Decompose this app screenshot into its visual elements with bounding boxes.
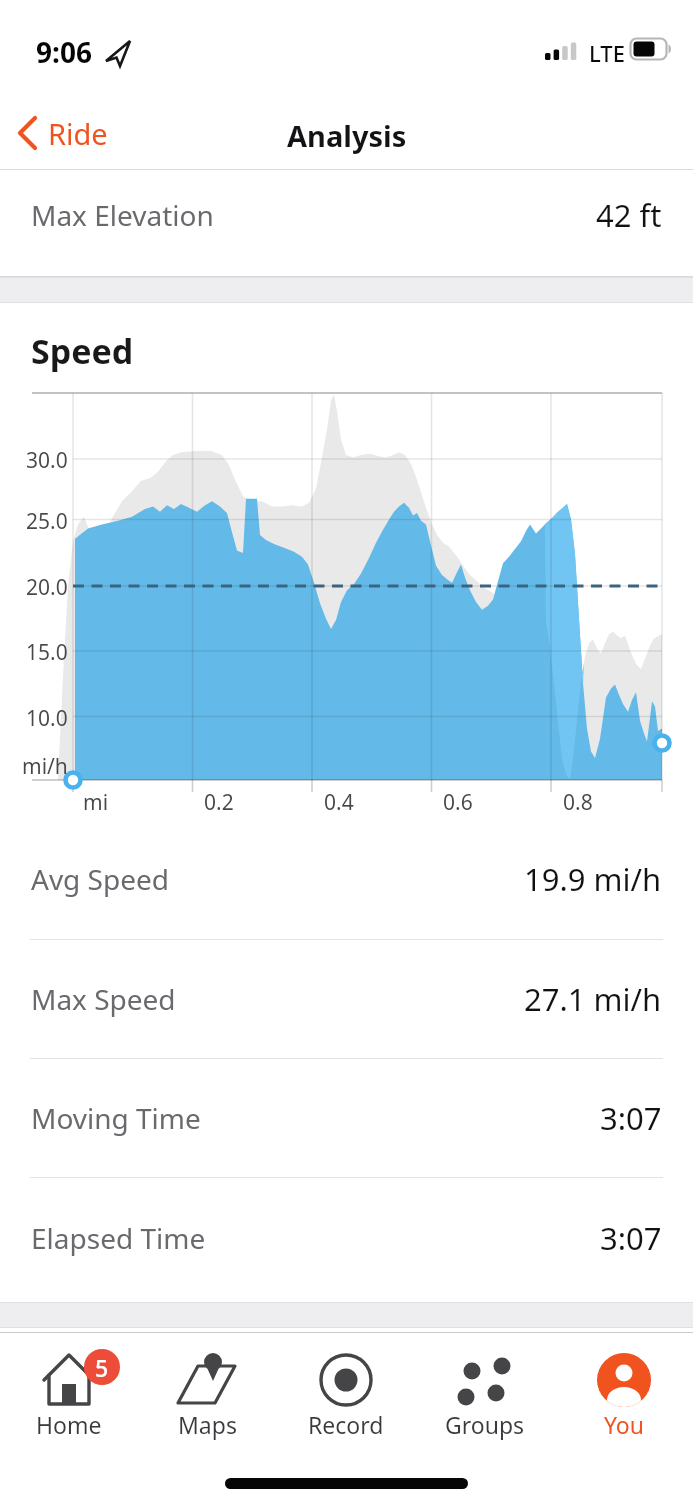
staticText: Record — [308, 1409, 384, 1440]
button[interactable]: Maps — [138, 1328, 276, 1500]
button[interactable]: You — [554, 1328, 693, 1500]
staticText: Analysis — [287, 116, 407, 155]
staticText: 42 ft — [596, 194, 662, 236]
staticText: 27.1 mi/h — [524, 978, 662, 1020]
staticText: mi — [83, 788, 109, 814]
staticText: mi/h — [22, 752, 68, 778]
staticText: Moving Time — [31, 1099, 201, 1137]
staticText: 10.0 — [26, 704, 68, 730]
staticText: 0.4 — [324, 788, 354, 814]
staticText: 0.2 — [204, 788, 234, 814]
staticText: Speed — [31, 328, 134, 374]
staticText: Elapsed Time — [31, 1219, 206, 1257]
staticText: LTE — [589, 38, 625, 68]
button[interactable]: Elapsed Time — [31, 1178, 662, 1297]
staticText: 20.0 — [26, 573, 68, 599]
staticText: Maps — [178, 1409, 237, 1440]
staticText: 0.6 — [443, 788, 473, 814]
staticText: 9:06 — [36, 33, 92, 71]
button[interactable]: Max Elevation — [31, 170, 662, 260]
staticText: Home — [36, 1409, 102, 1440]
staticText: 25.0 — [26, 507, 68, 533]
staticText: 30.0 — [26, 446, 68, 472]
button[interactable]: Ride — [14, 112, 108, 154]
staticText: 3:07 — [600, 1217, 662, 1259]
button[interactable]: Avg Speed — [31, 819, 662, 939]
button[interactable]: Record — [276, 1328, 415, 1500]
staticText: Groups — [445, 1409, 525, 1440]
button[interactable]: Max Speed — [31, 940, 662, 1058]
staticText: You — [604, 1409, 644, 1440]
staticText: 19.9 mi/h — [524, 858, 662, 900]
staticText: Max Speed — [31, 980, 176, 1018]
staticText: 3:07 — [600, 1097, 662, 1139]
staticText: Ride — [48, 114, 108, 153]
button[interactable]: Groups — [415, 1328, 554, 1500]
staticText: 0.8 — [563, 788, 593, 814]
button[interactable]: 5 — [0, 1328, 138, 1500]
staticText: 5 — [95, 1352, 109, 1383]
staticText: 15.0 — [26, 638, 68, 664]
staticText: Avg Speed — [31, 860, 170, 898]
staticText: Max Elevation — [31, 196, 214, 234]
button[interactable]: Moving Time — [31, 1059, 662, 1177]
